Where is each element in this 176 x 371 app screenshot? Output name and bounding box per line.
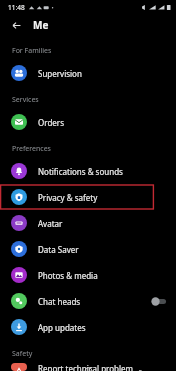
staticText: Notifications & sounds (38, 166, 123, 177)
staticText: Safety (12, 349, 33, 359)
button[interactable]: Notifications & sounds (0, 158, 176, 184)
staticText: Data Saver (38, 244, 79, 255)
button[interactable]: Data Saver (0, 236, 176, 262)
button[interactable]: Chat heads toggle (151, 297, 168, 306)
staticText: For Families (12, 46, 52, 56)
button[interactable]: Privacy & safety (0, 184, 176, 210)
button[interactable]: Avatar (0, 210, 176, 236)
staticText: Supervision (38, 68, 82, 79)
staticText: Privacy & safety (38, 192, 98, 203)
button[interactable]: Orders (0, 109, 176, 135)
staticText: Orders (38, 117, 64, 128)
button[interactable]: App updates (0, 314, 176, 340)
button[interactable]: Supervision (0, 60, 176, 86)
staticText: Me (33, 18, 49, 32)
staticText: Preferences (12, 144, 51, 154)
staticText: Chat heads (38, 296, 81, 307)
staticText: Report technical problem (38, 363, 134, 371)
staticText: Avatar (38, 218, 63, 229)
staticText: Photos & media (38, 270, 98, 281)
button[interactable]: Report technical problem (0, 363, 176, 371)
button[interactable]: Back (7, 16, 25, 34)
button[interactable]: Photos & media (0, 262, 176, 288)
staticText: Services (12, 95, 39, 105)
staticText: App updates (38, 322, 86, 333)
button[interactable]: Chat heads (0, 288, 176, 314)
staticText: 11:48 (8, 3, 25, 12)
